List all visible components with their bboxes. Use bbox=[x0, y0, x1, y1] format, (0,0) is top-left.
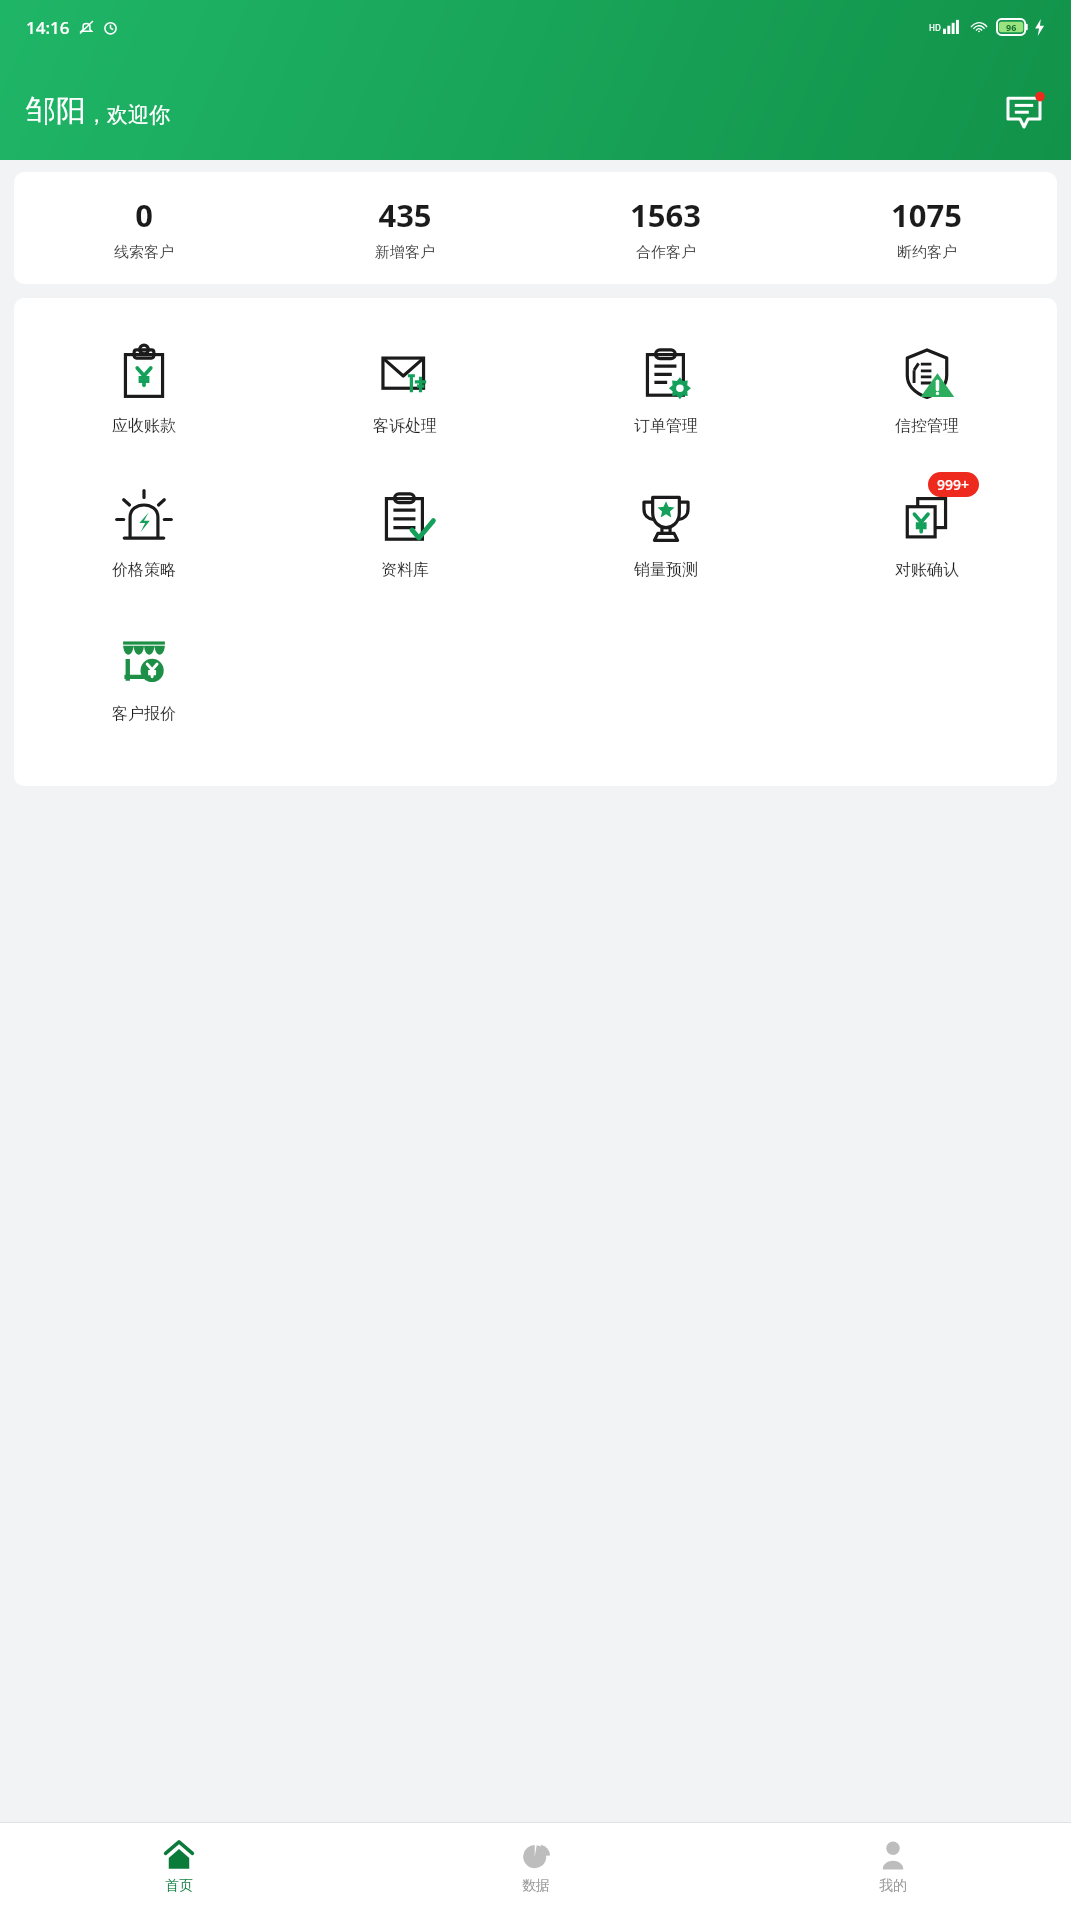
staticText: 我的 bbox=[879, 1877, 907, 1895]
button[interactable]: 首页 bbox=[0, 1823, 357, 1911]
staticText: 数据 bbox=[522, 1877, 550, 1895]
staticText: 对账确认 bbox=[895, 560, 959, 580]
staticText: 0 bbox=[135, 194, 153, 236]
staticText: 96 bbox=[1006, 21, 1017, 33]
staticText: 断约客户 bbox=[897, 243, 957, 262]
staticText: 订单管理 bbox=[634, 416, 698, 436]
staticText: 应收账款 bbox=[112, 416, 176, 436]
button[interactable]: 435 bbox=[274, 194, 535, 262]
staticText: 价格策略 bbox=[112, 560, 176, 580]
staticText: 客诉处理 bbox=[373, 416, 437, 436]
staticText: 销量预测 bbox=[634, 560, 698, 580]
staticText: 邹阳 bbox=[26, 92, 86, 130]
staticText: 资料库 bbox=[381, 560, 429, 580]
staticText: 线索客户 bbox=[114, 243, 174, 262]
button[interactable]: 信控管理 bbox=[796, 324, 1057, 446]
staticText: 1563 bbox=[630, 194, 701, 236]
staticText: 435 bbox=[378, 194, 432, 236]
button[interactable]: 999+ bbox=[796, 468, 1057, 590]
staticText: 合作客户 bbox=[636, 243, 696, 262]
staticText: 客户报价 bbox=[112, 704, 176, 724]
button[interactable]: 0 bbox=[14, 194, 274, 262]
button[interactable]: 价格策略 bbox=[14, 468, 274, 590]
button[interactable]: 客诉处理 bbox=[274, 324, 535, 446]
staticText: ，欢迎你 bbox=[86, 102, 170, 128]
staticText: 14:16 bbox=[26, 16, 70, 39]
button[interactable]: 消息 bbox=[1001, 88, 1047, 134]
staticText: 1075 bbox=[891, 194, 962, 236]
button[interactable]: 应收账款 bbox=[14, 324, 274, 446]
button[interactable]: 销量预测 bbox=[535, 468, 796, 590]
button[interactable]: 1563 bbox=[535, 194, 796, 262]
staticText: 首页 bbox=[165, 1877, 193, 1895]
staticText: 999+ bbox=[937, 475, 970, 494]
button[interactable]: 数据 bbox=[357, 1823, 714, 1911]
staticText: 信控管理 bbox=[895, 416, 959, 436]
button[interactable]: 客户报价 bbox=[14, 612, 274, 734]
button[interactable]: 资料库 bbox=[274, 468, 535, 590]
button[interactable]: 我的 bbox=[714, 1823, 1071, 1911]
button[interactable]: 1075 bbox=[796, 194, 1057, 262]
staticText: HD bbox=[929, 22, 941, 33]
button[interactable]: 订单管理 bbox=[535, 324, 796, 446]
staticText: 新增客户 bbox=[375, 243, 435, 262]
